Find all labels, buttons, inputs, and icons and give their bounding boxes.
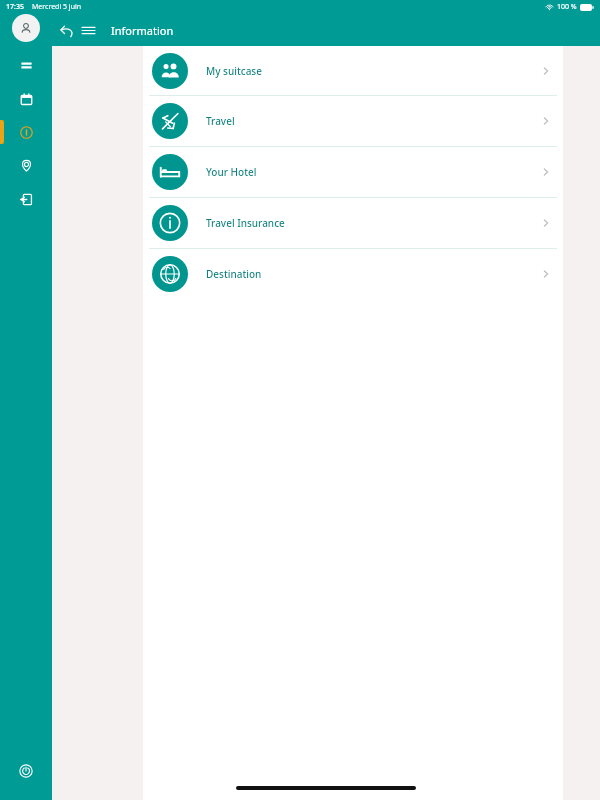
button[interactable]: Destination (143, 249, 563, 299)
button[interactable]: My suitcase (143, 46, 563, 95)
staticText: Mercredi 5 juin (32, 2, 82, 12)
staticText: Travel (206, 114, 235, 128)
button[interactable]: Back (56, 19, 78, 41)
button[interactable]: Calendar (0, 86, 52, 112)
button[interactable]: Power (18, 763, 34, 779)
staticText: 100 % (557, 2, 577, 12)
button[interactable]: Profile (12, 14, 40, 42)
button[interactable]: Travel (143, 96, 563, 146)
staticText: Destination (206, 267, 262, 281)
button[interactable]: Cards (0, 52, 52, 78)
staticText: 17:35 (6, 2, 24, 12)
button[interactable]: Information (0, 119, 52, 145)
staticText: Your Hotel (206, 165, 257, 179)
button[interactable]: Logout (0, 186, 52, 212)
button[interactable]: Places (0, 152, 52, 178)
button[interactable]: Your Hotel (143, 147, 563, 197)
button[interactable]: Menu (77, 19, 99, 41)
button[interactable]: Travel Insurance (143, 198, 563, 248)
staticText: Travel Insurance (206, 216, 285, 230)
staticText: Information (111, 23, 174, 38)
staticText: My suitcase (206, 64, 262, 78)
